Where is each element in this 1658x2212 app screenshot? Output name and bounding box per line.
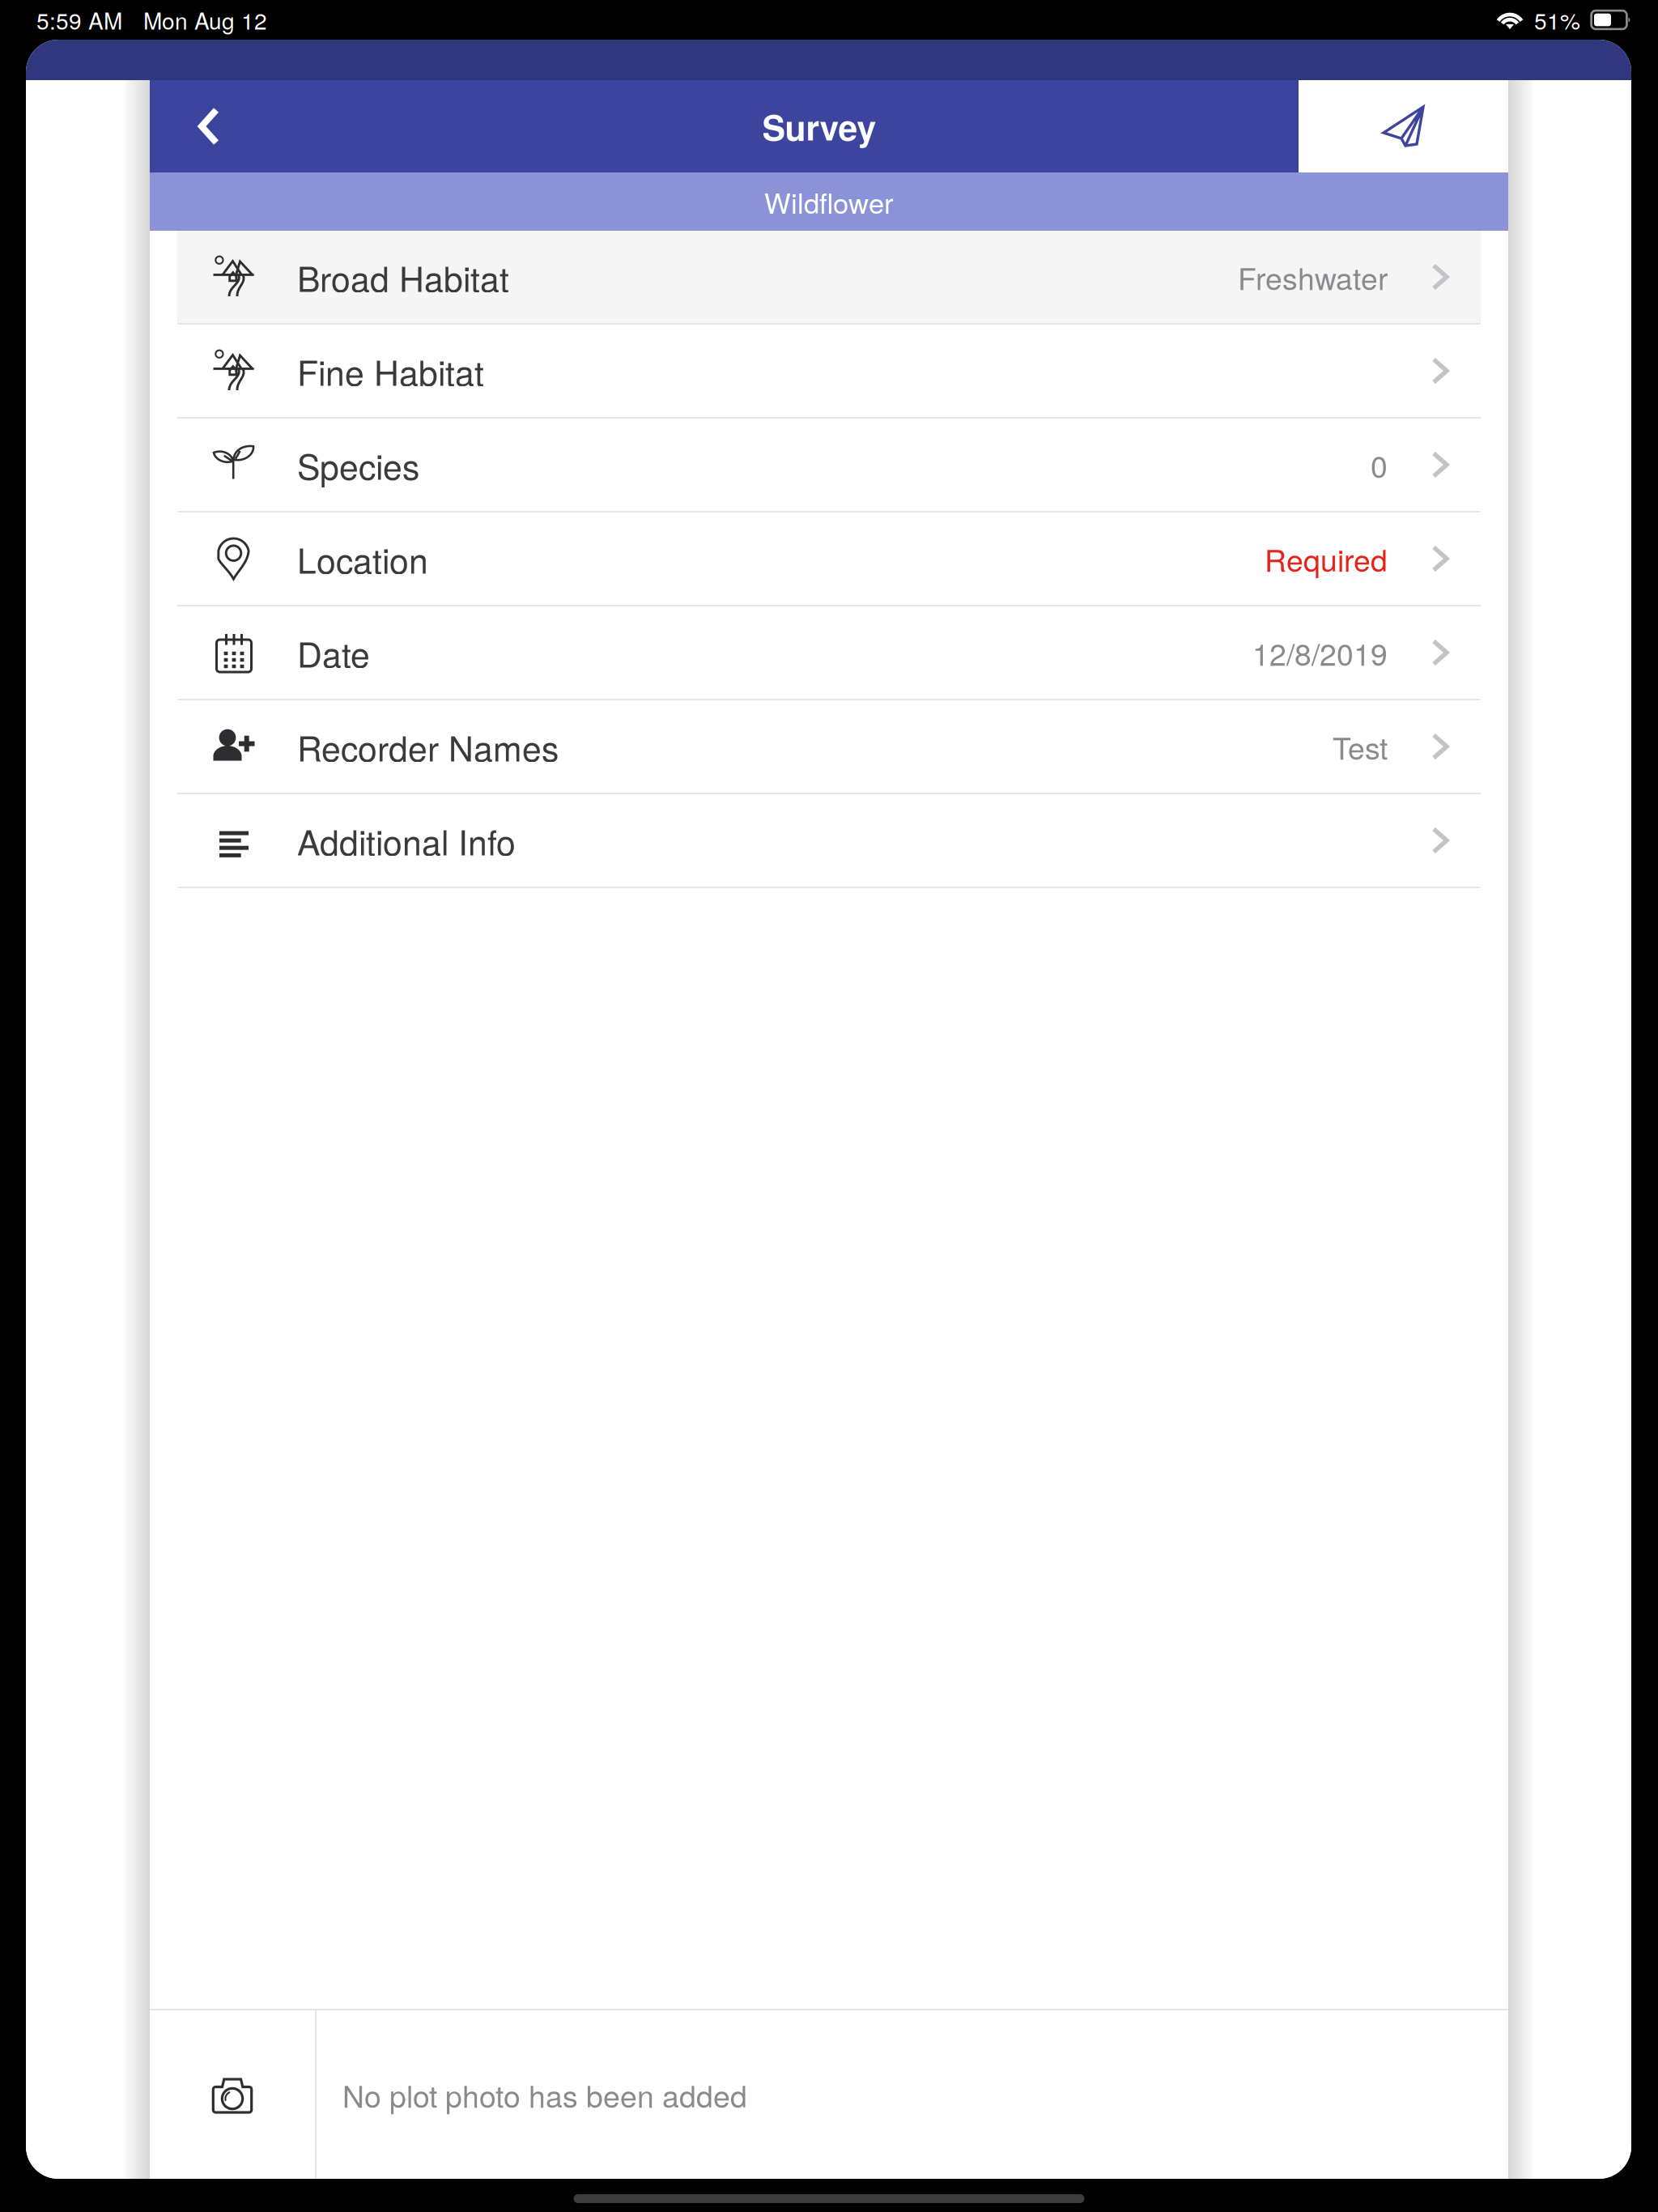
staticText: Date: [297, 628, 370, 677]
staticText: No plot photo has been added: [342, 2073, 747, 2116]
staticText: Required: [1265, 537, 1388, 580]
button[interactable]: Fine Habitat: [177, 325, 1481, 419]
staticText: 0: [1371, 443, 1388, 486]
staticText: Mon Aug 12: [143, 4, 267, 36]
button[interactable]: Date: [177, 606, 1481, 700]
button[interactable]: Additional Info: [177, 794, 1481, 888]
staticText: Recorder Names: [297, 722, 559, 771]
staticText: Fine Habitat: [297, 346, 484, 396]
staticText: Additional Info: [297, 816, 516, 865]
button[interactable]: Recorder Names: [177, 700, 1481, 794]
button[interactable]: Location: [177, 513, 1481, 606]
staticText: Location: [297, 534, 428, 583]
staticText: Broad Habitat: [297, 252, 509, 302]
button[interactable]: Send: [1299, 80, 1508, 172]
button[interactable]: Species: [177, 419, 1481, 513]
staticText: 12/8/2019: [1252, 631, 1388, 674]
staticText: Survey: [762, 102, 876, 151]
staticText: Species: [297, 440, 419, 490]
staticText: 5:59 AM: [36, 4, 122, 36]
staticText: 51%: [1534, 4, 1580, 36]
staticText: Test: [1333, 725, 1388, 768]
button[interactable]: Back: [150, 80, 298, 172]
staticText: Wildflower: [764, 182, 894, 222]
button[interactable]: No plot photo has been added: [150, 2010, 1508, 2179]
staticText: Freshwater: [1238, 255, 1388, 299]
button[interactable]: Broad Habitat: [177, 231, 1481, 325]
